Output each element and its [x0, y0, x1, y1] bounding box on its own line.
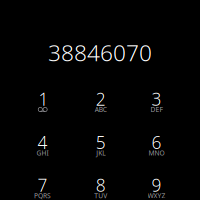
button[interactable]: 2: [72, 82, 129, 125]
staticText: JKL: [96, 148, 105, 157]
staticText: DEF: [150, 105, 162, 114]
staticText: MNO: [148, 148, 164, 157]
button[interactable]: 4: [14, 125, 71, 168]
button[interactable]: 9: [128, 168, 185, 200]
staticText: 9: [151, 174, 161, 197]
staticText: 8: [96, 174, 106, 197]
button[interactable]: 5: [72, 125, 129, 168]
staticText: WXYZ: [147, 191, 165, 200]
staticText: TUV: [94, 191, 107, 200]
staticText: GHI: [37, 148, 49, 157]
staticText: 1: [38, 87, 48, 110]
staticText: 6: [151, 131, 161, 154]
button[interactable]: 8: [72, 168, 129, 200]
staticText: ABC: [95, 105, 107, 114]
button[interactable]: 3: [128, 82, 185, 125]
button[interactable]: 1, voicemail: [14, 82, 71, 125]
staticText: 4: [38, 131, 48, 154]
button[interactable]: 7: [14, 168, 71, 200]
staticText: 2: [96, 87, 106, 110]
staticText: 7: [38, 174, 48, 197]
staticText: PQRS: [34, 191, 51, 200]
button[interactable]: 6: [128, 125, 185, 168]
staticText: 5: [96, 131, 106, 154]
staticText: 3: [151, 87, 161, 110]
staticText: 38846070: [48, 37, 152, 67]
